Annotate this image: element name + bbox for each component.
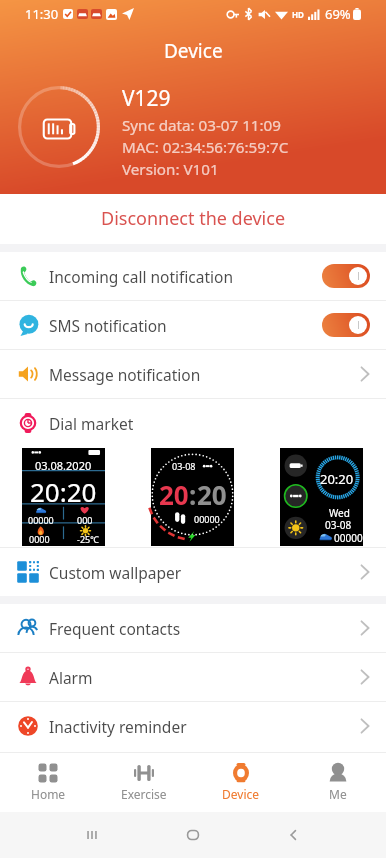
staticText: Frequent contacts: [49, 618, 181, 639]
button[interactable]: Device: [192, 753, 289, 812]
button[interactable]: Me: [289, 753, 386, 812]
staticText: Dial market: [49, 413, 134, 434]
staticText: 20: [159, 477, 189, 512]
button[interactable]: Alarm: [0, 653, 386, 701]
button[interactable]: Custom wallpaper: [0, 548, 386, 596]
staticText: 20: [197, 477, 227, 512]
staticText: :: [189, 477, 197, 512]
button[interactable]: Incoming call notification: [0, 252, 386, 300]
staticText: Version: V101: [122, 159, 219, 180]
staticText: Custom wallpaper: [49, 562, 182, 583]
staticText: MAC: 02:34:56:76:59:7C: [122, 137, 289, 158]
button[interactable]: Frequent contacts: [0, 604, 386, 652]
staticText: Device: [222, 786, 260, 802]
staticText: 03-08: [325, 518, 352, 532]
button[interactable]: Disconnect the device: [0, 194, 386, 244]
staticText: 00000: [334, 531, 363, 545]
other: Home: [184, 826, 202, 844]
button[interactable]: Message notification: [0, 350, 386, 398]
button[interactable]: Exercise: [96, 753, 192, 812]
button[interactable]: 20:20: [280, 448, 363, 546]
staticText: Sync data: 03-07 11:09: [122, 115, 281, 136]
staticText: V129: [122, 84, 171, 113]
other: Back: [285, 826, 303, 844]
staticText: Device: [164, 38, 223, 64]
button[interactable]: 03.08.2020: [22, 448, 105, 546]
staticText: 000: [77, 514, 93, 526]
button[interactable]: Dial market: [0, 399, 386, 447]
button[interactable]: 03-08: [151, 448, 234, 546]
staticText: Message notification: [49, 364, 201, 385]
staticText: 00000: [194, 513, 220, 525]
staticText: HD: [292, 9, 304, 20]
staticText: Incoming call notification: [49, 266, 234, 287]
staticText: SMS notification: [49, 315, 167, 336]
button[interactable]: Home: [0, 753, 96, 812]
button[interactable]: [322, 313, 370, 337]
staticText: -25℃: [77, 533, 100, 545]
staticText: 20:20: [320, 470, 354, 488]
staticText: 03-08: [172, 460, 196, 472]
other: Recents: [83, 826, 101, 844]
staticText: 00000: [28, 514, 54, 526]
staticText: Inactivity reminder: [49, 716, 187, 737]
staticText: Home: [31, 786, 66, 802]
staticText: 0000: [29, 533, 50, 545]
staticText: Exercise: [121, 786, 167, 802]
staticText: 69%: [325, 5, 351, 23]
staticText: Disconnect the device: [101, 206, 286, 231]
button[interactable]: SMS notification: [0, 301, 386, 349]
staticText: 20:20: [30, 474, 97, 509]
button[interactable]: Inactivity reminder: [0, 702, 386, 750]
button[interactable]: [322, 264, 370, 288]
staticText: 11:30: [25, 5, 59, 23]
staticText: 03.08.2020: [35, 458, 92, 473]
staticText: Me: [329, 786, 347, 802]
staticText: Alarm: [49, 667, 93, 688]
staticText: Wed: [329, 506, 350, 520]
